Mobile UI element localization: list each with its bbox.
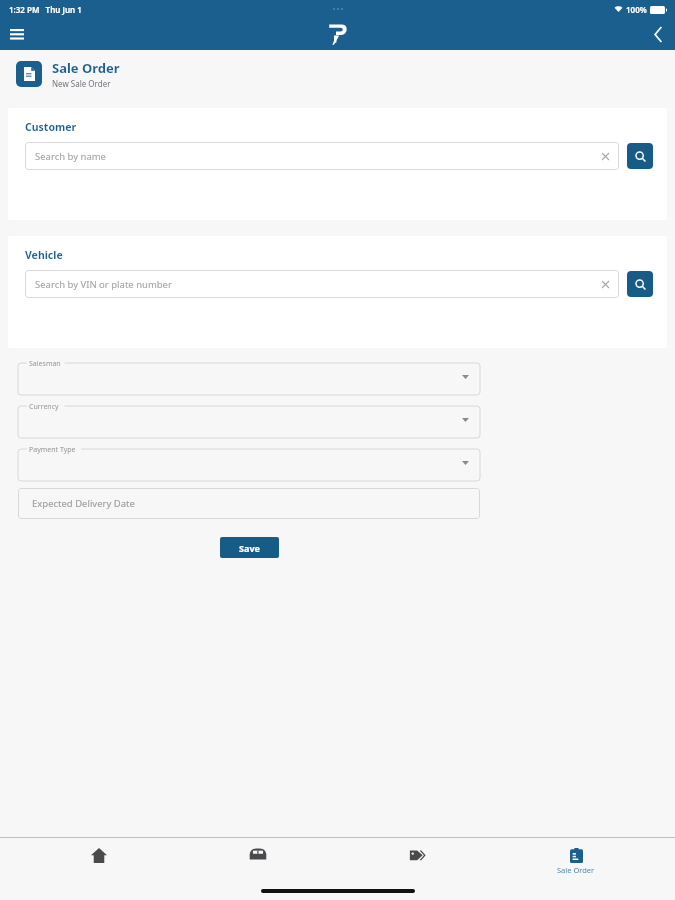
button[interactable]: Search bbox=[627, 271, 653, 297]
button[interactable]: Save bbox=[220, 537, 279, 558]
button[interactable]: Sale Order bbox=[516, 848, 636, 875]
staticText: Salesman bbox=[29, 359, 61, 369]
staticText: 100% bbox=[626, 4, 647, 15]
staticText: Save bbox=[239, 542, 260, 554]
staticText: New Sale Order bbox=[52, 78, 111, 89]
staticText: 1:32 PM Thu Jun 1 bbox=[9, 4, 82, 15]
button[interactable]: Search by VIN or plate number bbox=[25, 270, 619, 298]
staticText: Search by VIN or plate number bbox=[35, 278, 172, 291]
button[interactable]: Currency bbox=[18, 402, 480, 438]
staticText: Sale Order bbox=[557, 865, 595, 875]
staticText: Expected Delivery Date bbox=[32, 497, 135, 510]
button[interactable]: Payment Type bbox=[18, 445, 480, 481]
staticText: Vehicle bbox=[25, 248, 63, 262]
button[interactable]: Home bbox=[39, 848, 159, 863]
staticText: Sale Order bbox=[52, 59, 120, 77]
button[interactable]: Vehicles bbox=[198, 848, 318, 860]
staticText: Search by name bbox=[35, 150, 106, 163]
staticText: Customer bbox=[25, 120, 77, 134]
staticText: Currency bbox=[29, 402, 59, 412]
button[interactable]: Search bbox=[627, 143, 653, 169]
button[interactable]: Offers bbox=[357, 848, 477, 862]
button[interactable]: Salesman bbox=[18, 359, 480, 395]
button[interactable]: Clear bbox=[598, 149, 612, 163]
button[interactable]: Back bbox=[641, 18, 675, 50]
button[interactable]: Open navigation menu bbox=[0, 18, 34, 50]
button[interactable]: Search by name bbox=[25, 142, 619, 170]
button[interactable]: Clear bbox=[598, 277, 612, 291]
button[interactable]: Expected Delivery Date bbox=[18, 488, 480, 519]
staticText: Payment Type bbox=[29, 445, 76, 455]
